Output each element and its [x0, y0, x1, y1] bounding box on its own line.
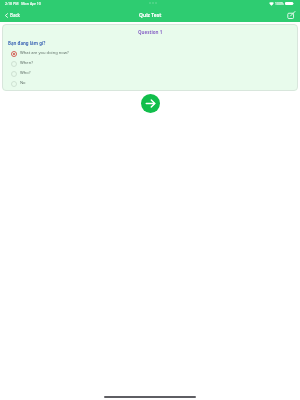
- button[interactable]: What are you doing now?: [2, 48, 298, 58]
- staticText: No: [20, 80, 26, 86]
- staticText: What are you doing now?: [20, 50, 69, 56]
- staticText: Question 1: [138, 29, 163, 35]
- staticText: Quiz Test: [139, 12, 162, 19]
- staticText: 100%: [275, 1, 284, 6]
- button[interactable]: Next question: [141, 94, 160, 113]
- button[interactable]: Back: [0, 10, 25, 20]
- button[interactable]: No: [2, 78, 298, 88]
- staticText: When?: [20, 60, 33, 66]
- button[interactable]: Who?: [2, 68, 298, 78]
- button[interactable]: When?: [2, 58, 298, 68]
- staticText: Back: [10, 12, 21, 18]
- staticText: Who?: [20, 70, 31, 76]
- staticText: Bạn đang làm gì?: [8, 40, 46, 46]
- staticText: 2:18 PM Mon Apr 10: [5, 1, 41, 6]
- button[interactable]: Edit quiz: [285, 9, 297, 21]
